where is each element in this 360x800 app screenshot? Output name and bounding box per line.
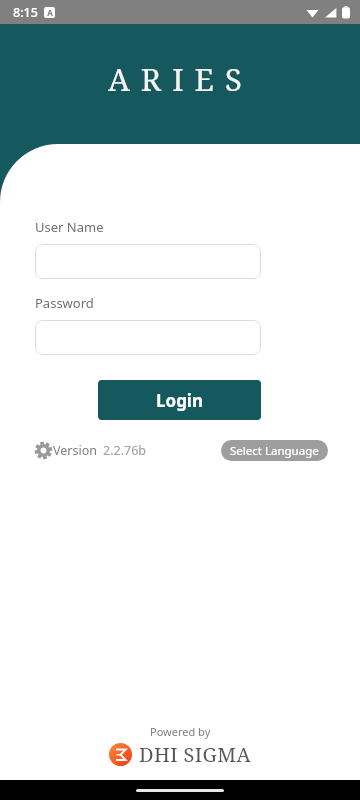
staticText: A	[47, 7, 53, 18]
button[interactable]: Login	[98, 380, 261, 420]
button[interactable]: User Name input	[35, 244, 261, 279]
staticText: 2.2.76b	[103, 442, 146, 459]
staticText: Powered by	[150, 724, 211, 739]
staticText: ARIES	[108, 58, 253, 100]
other: Settings	[34, 441, 53, 460]
staticText: Login	[156, 389, 204, 412]
button[interactable]: Settings	[34, 441, 146, 460]
staticText: Select Language	[230, 443, 319, 459]
button[interactable]: Select Language	[221, 440, 328, 461]
staticText: User Name	[35, 218, 104, 236]
staticText: Password	[35, 294, 94, 312]
staticText: DHI SIGMA	[139, 741, 251, 768]
staticText: 8:15	[13, 4, 38, 21]
staticText: Version	[53, 442, 97, 459]
button[interactable]: Password input	[35, 320, 261, 355]
